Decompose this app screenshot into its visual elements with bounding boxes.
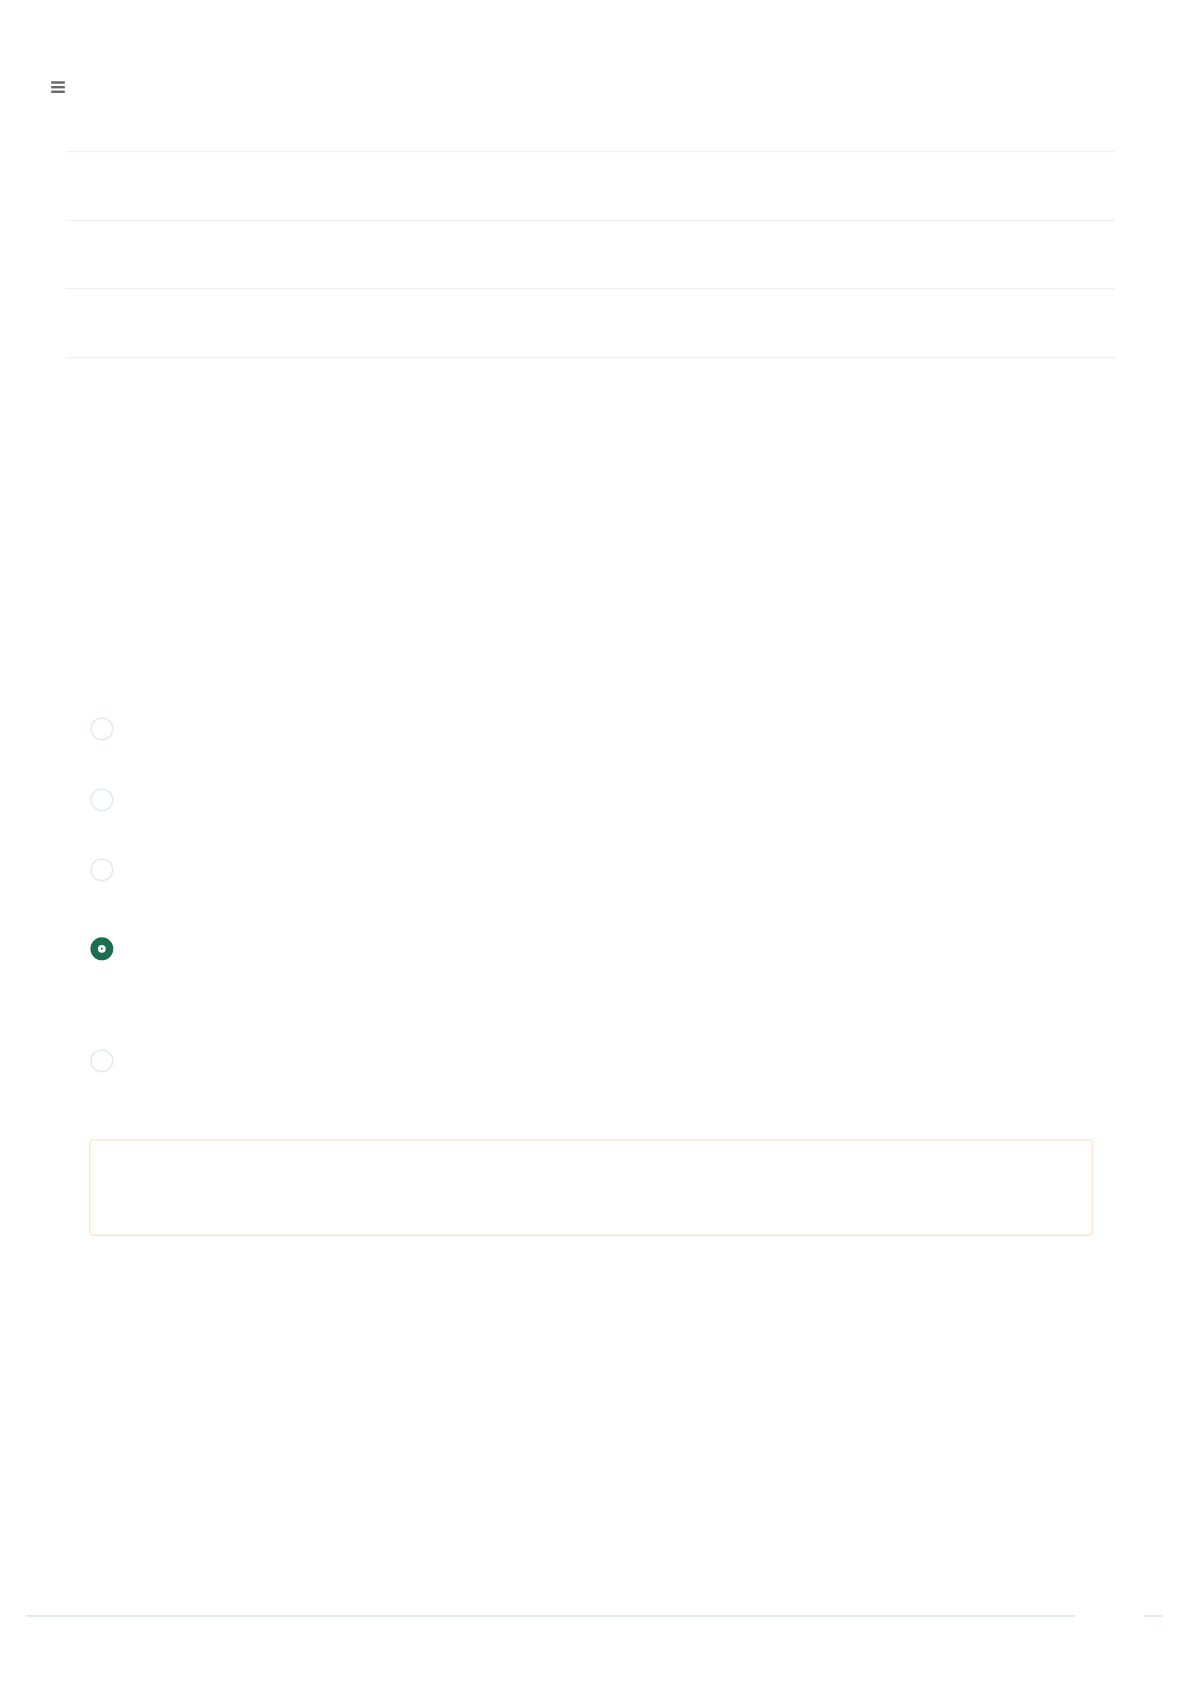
- button[interactable]: Option 1: [89, 716, 114, 741]
- button[interactable]: Option 2: [89, 787, 114, 812]
- button[interactable]: Additional comments text field: [88, 1138, 1094, 1237]
- button[interactable]: Open navigation menu: [40, 69, 76, 105]
- button[interactable]: Option 5: [89, 1048, 114, 1073]
- button[interactable]: Option 4, selected: [89, 936, 114, 961]
- button[interactable]: Option 3: [89, 857, 114, 882]
